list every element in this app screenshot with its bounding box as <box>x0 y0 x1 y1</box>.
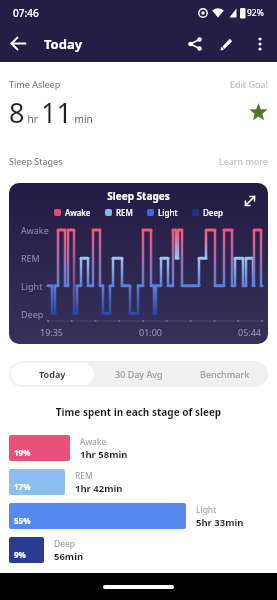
staticText: Awake <box>21 224 49 236</box>
button[interactable] <box>179 28 211 60</box>
staticText: Deep <box>203 207 223 218</box>
staticText: Today <box>44 35 83 53</box>
staticText: Deep <box>54 538 76 550</box>
staticText: Awake <box>65 207 91 218</box>
button[interactable]: Benchmark <box>182 361 268 387</box>
button[interactable]: 9% <box>9 537 277 563</box>
button[interactable]: 55% <box>9 503 277 529</box>
staticText: min <box>72 112 93 126</box>
staticText: Awake <box>80 436 107 448</box>
staticText: Light <box>21 280 43 292</box>
staticText: hr <box>25 112 41 126</box>
staticText: Deep <box>21 308 44 320</box>
staticText: 9% <box>14 549 26 560</box>
staticText: 17% <box>14 481 31 492</box>
staticText: Today <box>39 368 66 380</box>
staticText: Time spent in each stage of sleep <box>0 405 277 419</box>
button[interactable]: 17% <box>9 469 277 495</box>
staticText: REM <box>116 207 133 218</box>
button[interactable]: 30 Day Avg <box>96 361 182 387</box>
staticText: Edit Goal <box>230 78 268 90</box>
staticText: Light <box>196 504 217 516</box>
button[interactable] <box>211 28 243 60</box>
staticText: Light <box>158 207 178 218</box>
staticText: REM <box>21 252 40 264</box>
button[interactable] <box>0 25 37 62</box>
staticText: Benchmark <box>200 368 250 380</box>
staticText: 55% <box>14 515 31 526</box>
staticText: 19:35 <box>40 326 64 338</box>
staticText: 1hr 58min <box>80 448 128 461</box>
staticText: 1hr 42min <box>75 482 123 495</box>
staticText: 11 <box>41 94 72 131</box>
staticText: Sleep Stages <box>9 155 63 167</box>
button[interactable] <box>240 191 260 211</box>
staticText: 56min <box>54 550 84 563</box>
staticText: 05:44 <box>238 326 262 338</box>
button[interactable] <box>243 27 277 61</box>
staticText: 92% <box>247 7 264 19</box>
staticText: 30 Day Avg <box>115 368 163 380</box>
staticText: 01:00 <box>139 326 163 338</box>
button[interactable]: 19% <box>9 435 277 461</box>
staticText: REM <box>75 470 93 482</box>
staticText: 19% <box>14 447 31 458</box>
staticText: Learn more <box>219 155 268 167</box>
staticText: Sleep Stages <box>9 189 268 203</box>
staticText: 07:46 <box>13 6 39 20</box>
staticText: Time Asleep <box>9 78 61 90</box>
staticText: 8 <box>9 94 25 131</box>
button[interactable]: Today <box>11 363 94 385</box>
staticText: 5hr 33min <box>196 516 244 529</box>
button[interactable]: Sleep Stages <box>9 183 268 344</box>
